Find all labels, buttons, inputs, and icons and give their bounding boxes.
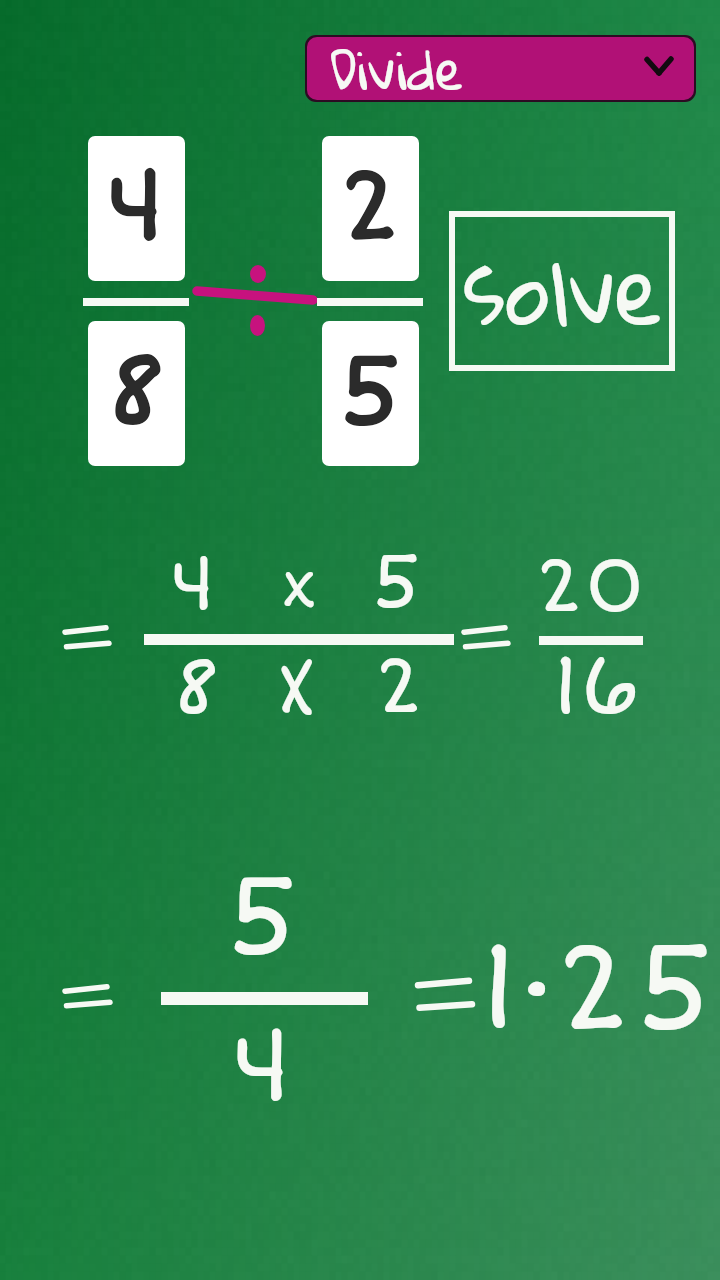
staticText: 2 — [160, 145, 580, 268]
button[interactable] — [88, 321, 185, 466]
staticText: 4 — [52, 1003, 472, 1130]
staticText: 20 — [380, 538, 720, 634]
staticText: 4 — [0, 146, 346, 269]
other: Divide — [190, 255, 330, 345]
button[interactable] — [322, 136, 419, 281]
staticText: 8 — [0, 331, 346, 454]
staticText: 8 — [0, 329, 346, 452]
staticText: 8 — [0, 330, 345, 453]
staticText: 5 — [52, 847, 472, 987]
staticText: 2 — [160, 146, 580, 269]
staticText: 2 — [189, 638, 609, 735]
staticText: 2 — [159, 145, 579, 268]
staticText: Divide — [330, 17, 550, 120]
staticText: 8 — [0, 638, 406, 737]
staticText: 1·25 — [387, 912, 720, 1065]
staticText: 5 — [159, 330, 579, 453]
staticText: 4 — [0, 145, 347, 268]
staticText: x — [88, 547, 508, 623]
staticText: 5 — [160, 331, 580, 454]
staticText: X — [86, 646, 506, 735]
button[interactable]: solve — [449, 211, 675, 371]
staticText: 5 — [161, 330, 581, 453]
staticText: 5 — [160, 330, 580, 453]
staticText: 16 — [386, 634, 720, 740]
staticText: 4 — [0, 144, 346, 267]
button[interactable] — [88, 136, 185, 281]
button[interactable]: Divide — [305, 35, 696, 102]
button[interactable] — [322, 321, 419, 466]
staticText: 5 — [160, 329, 580, 452]
staticText: 2 — [161, 145, 581, 268]
staticText: 5 — [186, 534, 606, 630]
staticText: 2 — [160, 144, 580, 267]
staticText: 4 — [0, 145, 345, 268]
staticText: solve — [450, 201, 676, 375]
staticText: 8 — [0, 330, 347, 453]
staticText: 4 — [0, 537, 403, 632]
staticText: 8 — [0, 330, 346, 453]
staticText: 4 — [0, 145, 346, 268]
